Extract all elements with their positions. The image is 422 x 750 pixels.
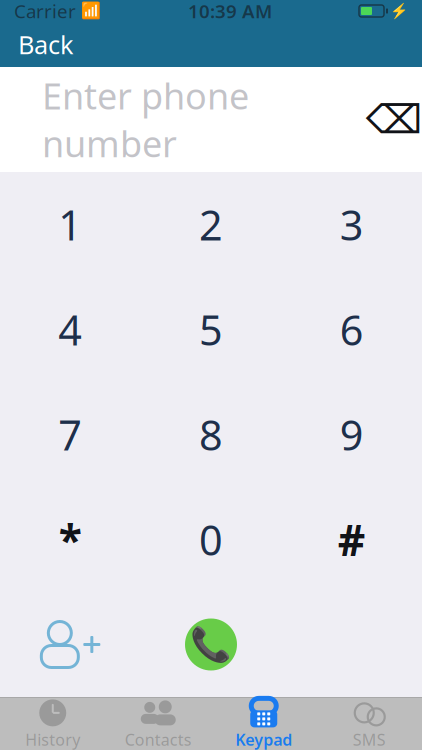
staticText: ⚡ [390,3,408,19]
staticText: 4 [58,302,82,357]
button[interactable]: 1 [0,172,141,277]
staticText: 1 [58,197,82,252]
staticText: 3 [340,197,364,252]
staticText: Enter phone number [42,72,249,167]
staticText: * [59,511,82,568]
staticText: Keypad [235,729,292,750]
button[interactable]: 9 [281,382,422,487]
button[interactable]: SMS [316,698,422,750]
staticText: Carrier [14,0,76,23]
staticText: 2 [199,197,223,252]
staticText: 5 [199,302,223,357]
staticText: Contacts [125,729,192,750]
button[interactable]: 2 [141,172,281,277]
button[interactable]: Delete [366,84,422,154]
button[interactable]: 4 [0,277,141,382]
staticText: 10:39 AM [188,0,272,23]
button[interactable]: * [0,487,141,592]
staticText: 📶 [81,2,101,20]
staticText: # [338,511,366,568]
button[interactable]: Back [0,22,92,67]
button[interactable]: Contacts [105,698,211,750]
staticText: 8 [199,407,223,462]
button[interactable]: 8 [141,382,281,487]
staticText: 9 [340,407,364,462]
button[interactable]: Call [141,592,281,697]
button[interactable]: 0 [141,487,281,592]
staticText: Back [18,28,74,61]
staticText: 6 [340,302,364,357]
staticText: History [25,729,80,750]
button[interactable]: Keypad [211,698,316,750]
button[interactable]: 3 [281,172,422,277]
button[interactable]: 6 [281,277,422,382]
button[interactable]: Add contact [0,592,141,697]
button[interactable]: 5 [141,277,281,382]
button[interactable]: 7 [0,382,141,487]
staticText: ⌫ [365,97,422,142]
staticText: 7 [58,407,82,462]
button[interactable]: # [281,487,422,592]
button[interactable]: History [0,698,105,750]
staticText: 📞 [190,625,232,664]
staticText: SMS [353,729,386,750]
staticText: 0 [199,512,223,567]
